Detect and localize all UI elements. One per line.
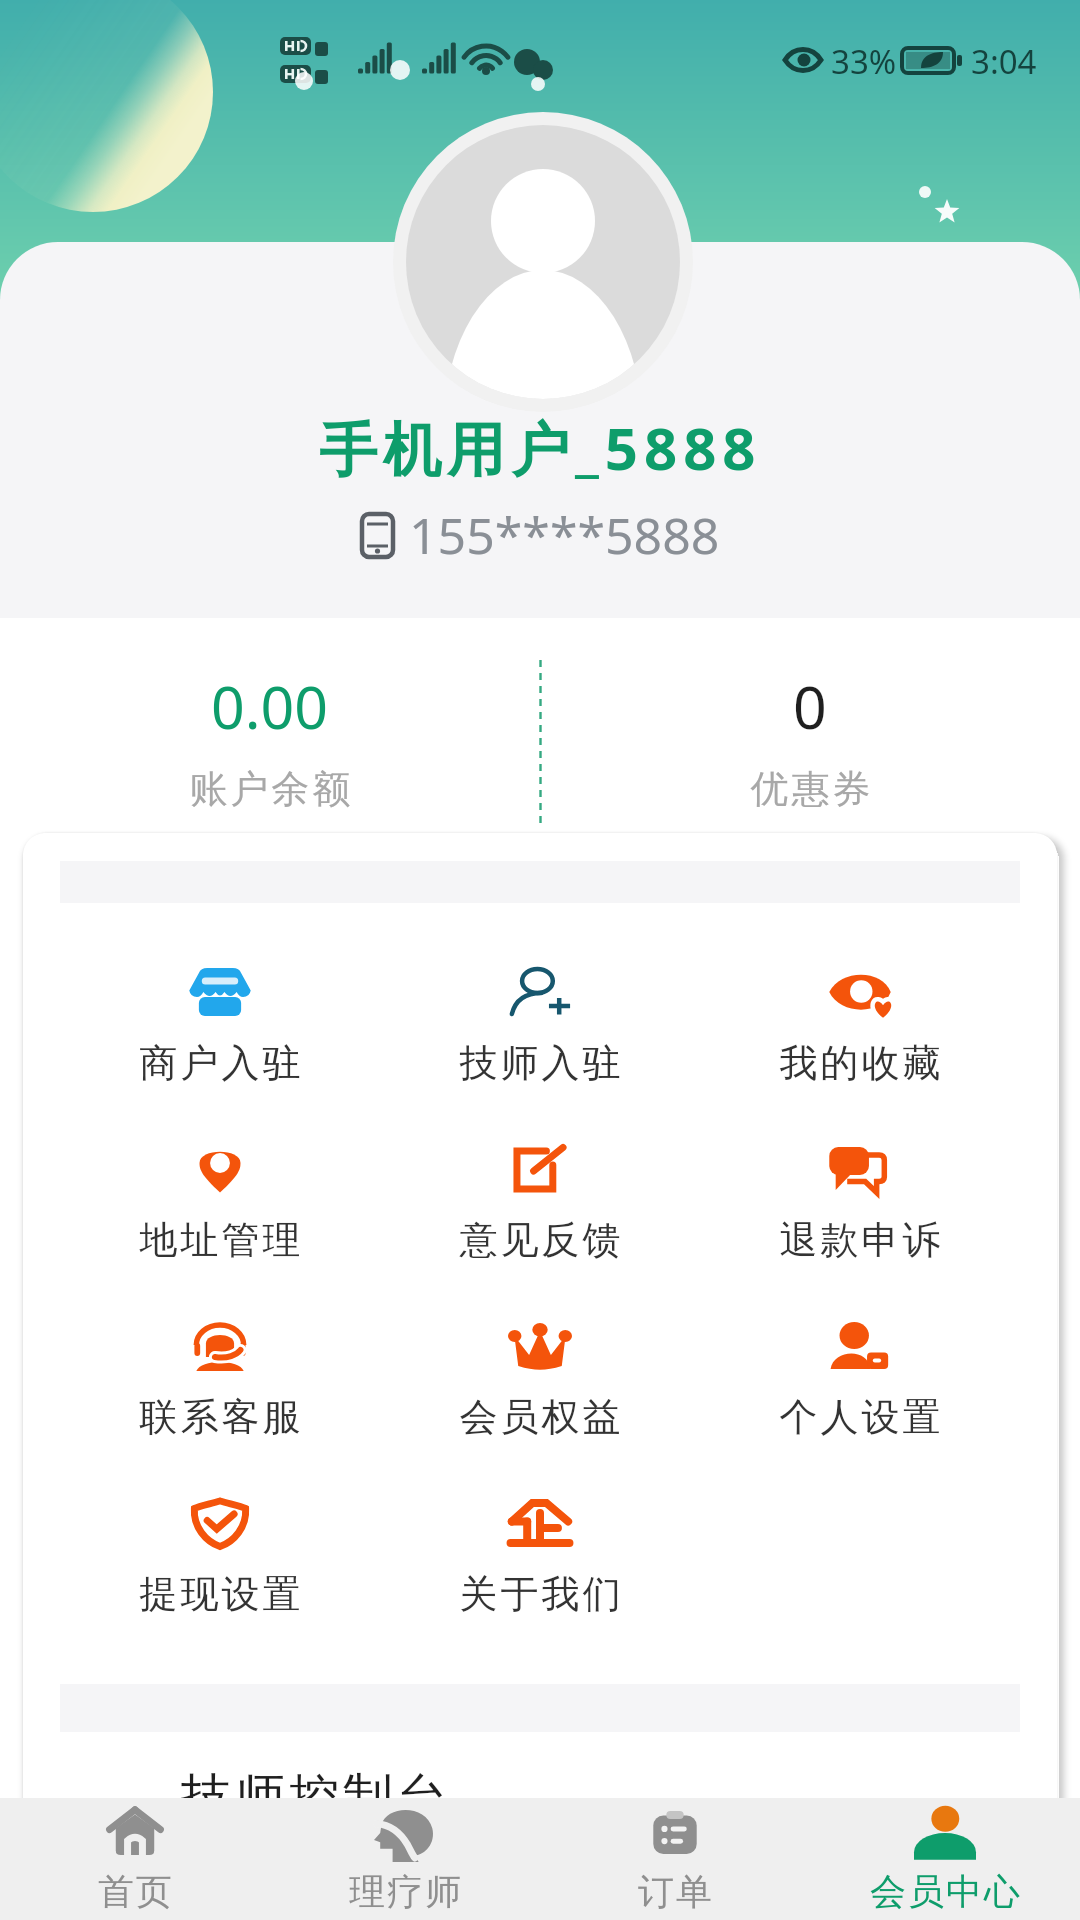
button[interactable]: 关于我们 xyxy=(380,1454,700,1631)
staticText: 退款申诉 xyxy=(778,1216,942,1264)
button[interactable]: 155****5888 xyxy=(360,501,720,569)
button[interactable]: 会员中心 xyxy=(810,1798,1080,1920)
button[interactable]: 商户入驻 xyxy=(60,923,380,1100)
button[interactable]: 订单 xyxy=(540,1798,810,1920)
staticText: 优惠券 xyxy=(749,765,872,813)
staticText: 会员中心 xyxy=(869,1869,1021,1914)
staticText: 技师控制台 xyxy=(179,1766,449,1829)
staticText: 联系客服 xyxy=(138,1393,302,1441)
staticText: 0.00 xyxy=(211,666,329,746)
staticText: 33% xyxy=(831,39,897,84)
button[interactable]: 技师入驻 xyxy=(380,923,700,1100)
button[interactable]: 会员权益 xyxy=(380,1277,700,1454)
button[interactable]: 首页 xyxy=(0,1798,270,1920)
staticText: 首页 xyxy=(97,1869,173,1914)
staticText: 155****5888 xyxy=(409,501,720,569)
staticText: 手机用户_5888 xyxy=(319,408,762,487)
staticText: 意见反馈 xyxy=(458,1216,622,1264)
button[interactable]: 0.00 xyxy=(0,618,540,833)
staticText: 提现设置 xyxy=(138,1570,302,1618)
button[interactable]: 联系客服 xyxy=(60,1277,380,1454)
button[interactable]: 意见反馈 xyxy=(380,1100,700,1277)
button[interactable]: Profile photo xyxy=(393,112,693,412)
button[interactable]: 地址管理 xyxy=(60,1100,380,1277)
button[interactable]: 我的收藏 xyxy=(700,923,1020,1100)
staticText: 账户余额 xyxy=(188,765,352,813)
staticText: 会员权益 xyxy=(458,1393,622,1441)
staticText: 订单 xyxy=(637,1869,713,1914)
staticText: 地址管理 xyxy=(138,1216,302,1264)
staticText: 理疗师 xyxy=(348,1869,462,1914)
staticText: 关于我们 xyxy=(458,1570,622,1618)
staticText: 0 xyxy=(793,666,827,746)
staticText: 个人设置 xyxy=(778,1393,942,1441)
staticText: 我的收藏 xyxy=(778,1039,942,1087)
button[interactable]: 个人设置 xyxy=(700,1277,1020,1454)
button[interactable]: 理疗师 xyxy=(270,1798,540,1920)
button[interactable]: 提现设置 xyxy=(60,1454,380,1631)
button[interactable]: 0 xyxy=(540,618,1080,833)
button[interactable]: 退款申诉 xyxy=(700,1100,1020,1277)
staticText: 3:04 xyxy=(971,39,1037,84)
staticText: 商户入驻 xyxy=(138,1039,302,1087)
staticText: 技师入驻 xyxy=(458,1039,622,1087)
